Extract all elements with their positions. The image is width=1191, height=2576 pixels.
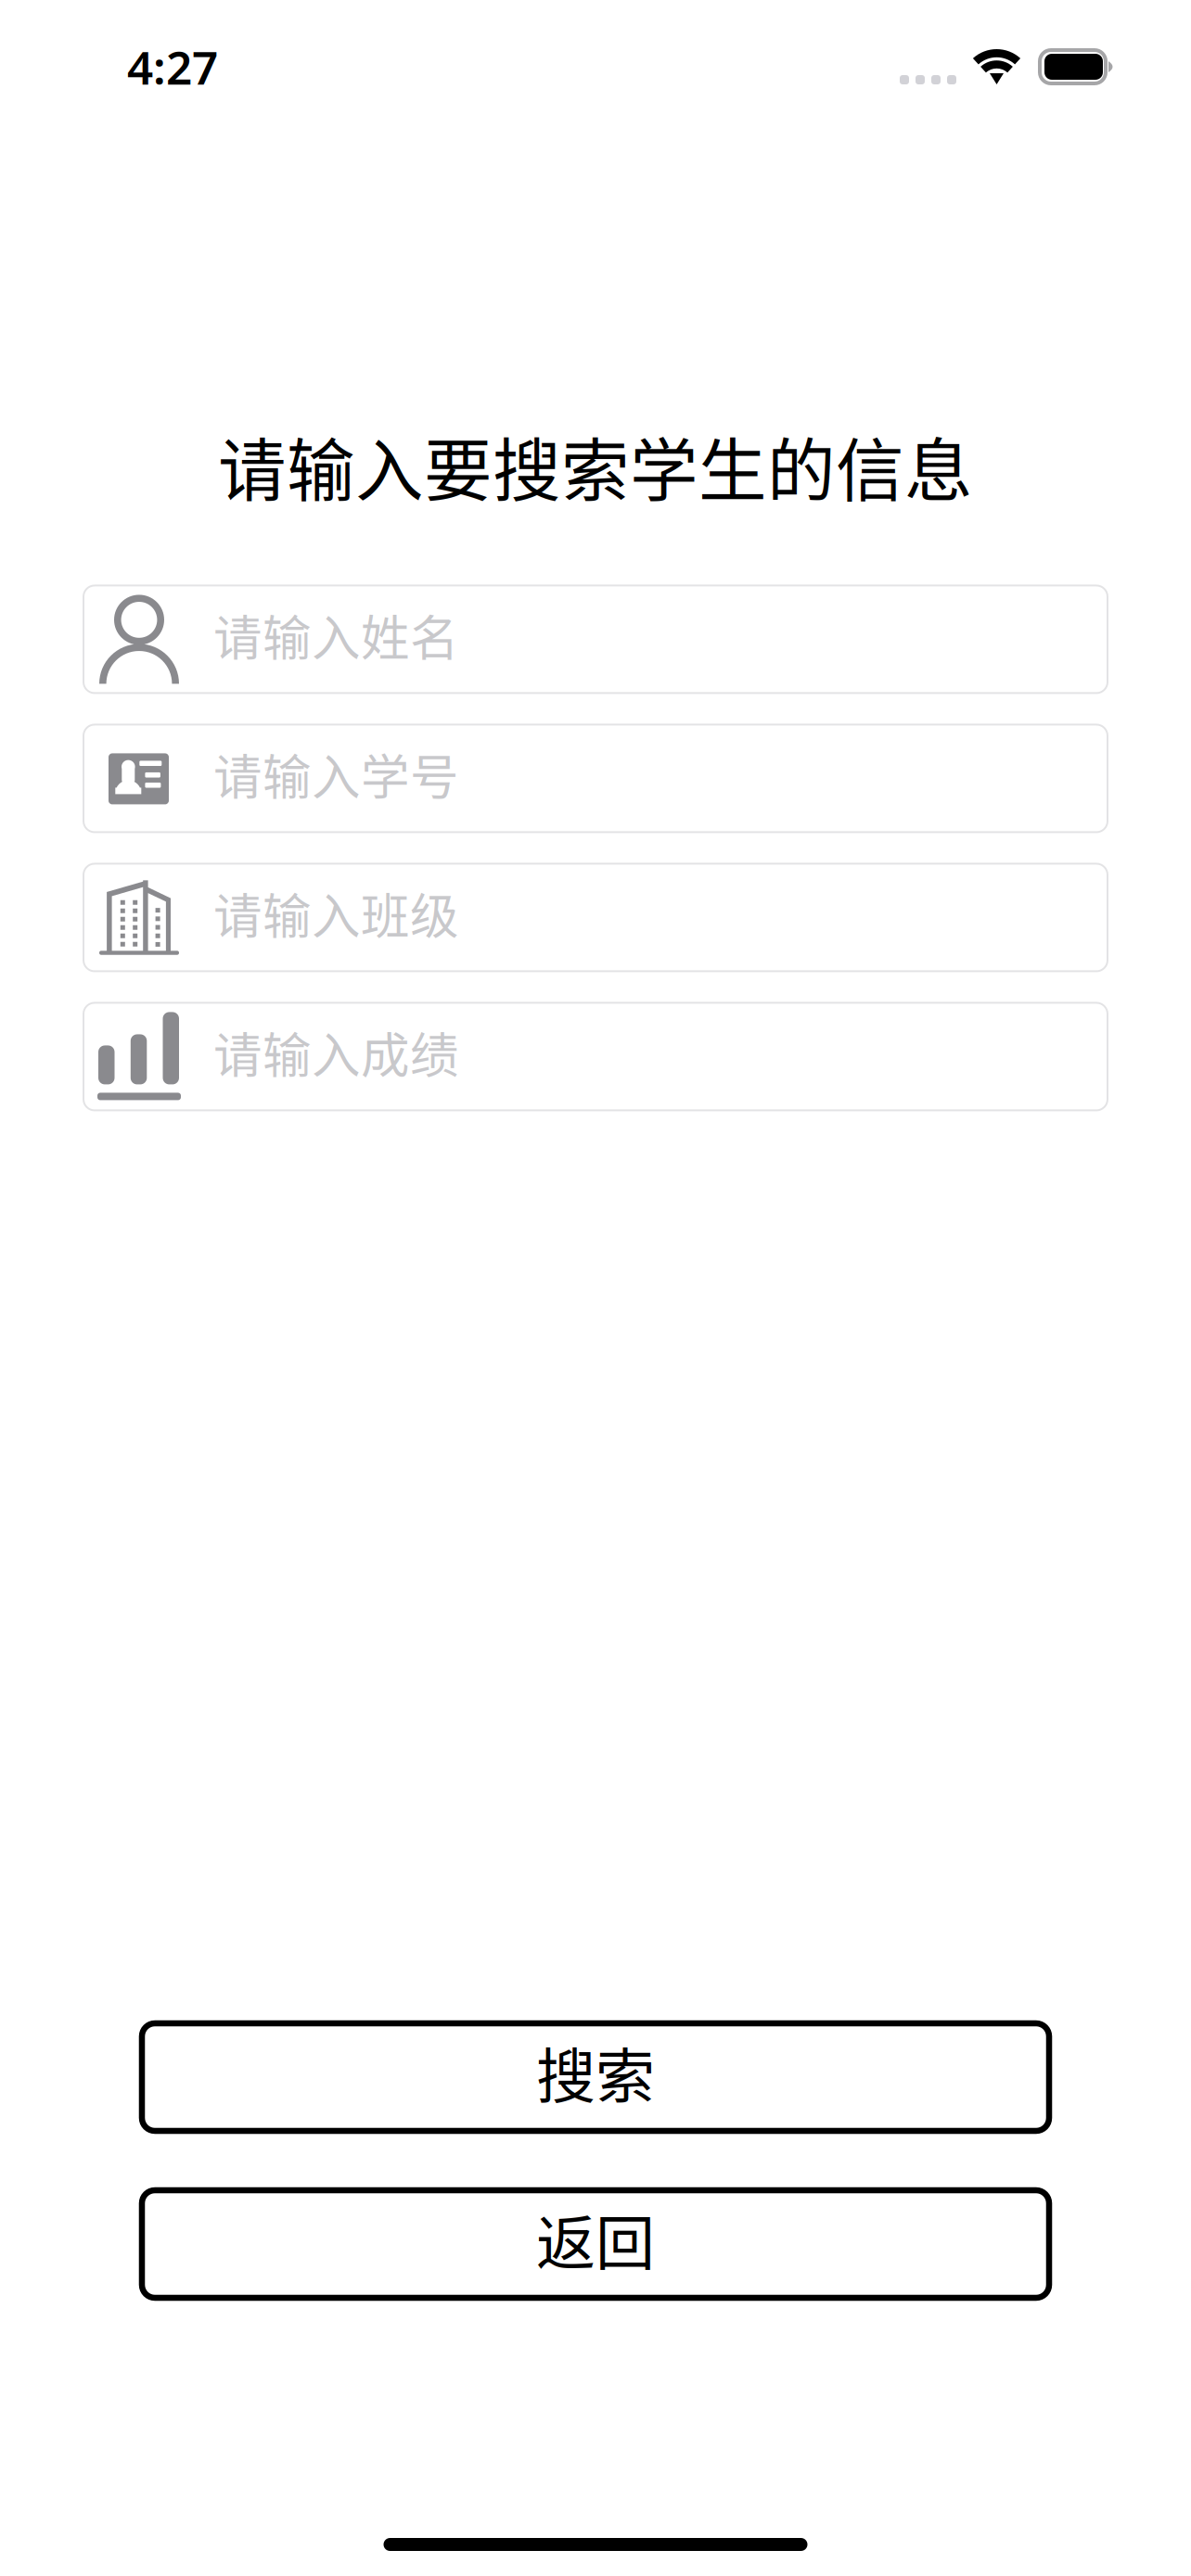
- staticText: 请输入要搜索学生的信息: [218, 416, 973, 515]
- staticText: 请输入成绩: [213, 1017, 459, 1087]
- button[interactable]: 请输入学号: [83, 725, 1108, 832]
- staticText: 请输入姓名: [213, 599, 459, 670]
- staticText: 返回: [536, 2196, 655, 2281]
- staticText: 搜索: [536, 2029, 655, 2115]
- staticText: 请输入学号: [213, 738, 459, 809]
- button[interactable]: 请输入班级: [83, 864, 1108, 971]
- button[interactable]: 请输入姓名: [83, 585, 1108, 693]
- button[interactable]: 搜索: [142, 2023, 1049, 2131]
- button[interactable]: 请输入成绩: [83, 1003, 1108, 1110]
- staticText: 请输入班级: [213, 878, 459, 948]
- staticText: 4:27: [127, 36, 218, 97]
- button[interactable]: 返回: [142, 2190, 1049, 2298]
